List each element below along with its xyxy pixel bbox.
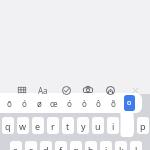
staticText: y bbox=[81, 120, 86, 132]
button[interactable]: w bbox=[17, 117, 29, 134]
staticText: e bbox=[35, 120, 41, 132]
button[interactable]: p bbox=[137, 117, 149, 134]
button[interactable]: Aa bbox=[38, 85, 48, 96]
staticText: w bbox=[19, 120, 27, 132]
button[interactable]: t bbox=[62, 117, 74, 134]
button[interactable]: d bbox=[40, 141, 52, 150]
staticText: j bbox=[105, 144, 108, 150]
button[interactable]: r bbox=[47, 117, 59, 134]
button[interactable]: q bbox=[2, 117, 14, 134]
button[interactable]: ō bbox=[3, 97, 15, 110]
button[interactable]: œ bbox=[48, 97, 60, 110]
staticText: k bbox=[119, 144, 124, 150]
staticText: Aa bbox=[38, 85, 48, 96]
staticText: o bbox=[127, 98, 132, 108]
button[interactable]: g bbox=[70, 141, 82, 150]
staticText: ø bbox=[37, 98, 42, 109]
staticText: i bbox=[112, 120, 115, 132]
button[interactable]: Table bbox=[18, 87, 26, 93]
button[interactable]: õ bbox=[107, 97, 119, 110]
button[interactable]: Effects bbox=[106, 86, 115, 95]
button[interactable]: ò bbox=[78, 97, 90, 110]
staticText: ó bbox=[22, 98, 27, 109]
button[interactable]: h bbox=[85, 141, 97, 150]
button[interactable]: Done bbox=[62, 86, 71, 95]
button[interactable]: ó bbox=[18, 97, 30, 110]
button[interactable]: ó bbox=[63, 97, 75, 110]
staticText: ō bbox=[7, 98, 12, 109]
staticText: h bbox=[88, 144, 94, 150]
staticText: r bbox=[51, 120, 55, 132]
staticText: a bbox=[13, 144, 19, 150]
button[interactable]: k bbox=[115, 141, 127, 150]
staticText: œ bbox=[50, 98, 58, 109]
staticText: f bbox=[59, 144, 63, 150]
staticText: ò bbox=[82, 98, 87, 109]
staticText: ô bbox=[96, 98, 101, 109]
staticText: l bbox=[135, 144, 138, 150]
staticText: d bbox=[43, 144, 49, 150]
button[interactable]: e bbox=[32, 117, 44, 134]
staticText: õ bbox=[111, 98, 116, 109]
button[interactable]: ô bbox=[92, 97, 104, 110]
staticText: u bbox=[95, 120, 101, 132]
button[interactable]: Close bbox=[132, 87, 139, 94]
button[interactable]: s bbox=[25, 141, 37, 150]
button[interactable]: Camera bbox=[83, 86, 93, 93]
staticText: ó bbox=[67, 98, 72, 109]
staticText: q bbox=[5, 120, 11, 132]
button[interactable]: y bbox=[77, 117, 89, 134]
button[interactable]: j bbox=[100, 141, 112, 150]
staticText: p bbox=[140, 120, 146, 132]
button[interactable]: ø bbox=[33, 97, 45, 110]
button[interactable]: u bbox=[92, 117, 104, 134]
staticText: s bbox=[29, 144, 34, 150]
button[interactable]: f bbox=[55, 141, 67, 150]
button[interactable]: a bbox=[10, 141, 22, 150]
button[interactable]: l bbox=[130, 141, 142, 150]
staticText: t bbox=[66, 120, 70, 132]
button[interactable]: o bbox=[124, 95, 135, 111]
staticText: g bbox=[73, 144, 79, 150]
button[interactable]: i bbox=[107, 117, 119, 134]
